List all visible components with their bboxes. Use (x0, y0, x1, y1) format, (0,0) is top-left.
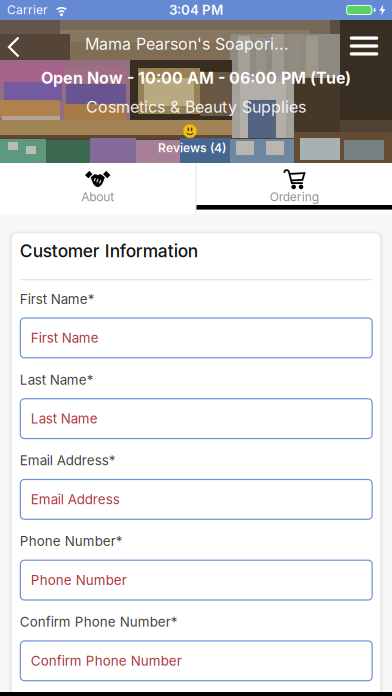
button[interactable]: Email Address (20, 479, 373, 520)
staticText: 3:04 PM (169, 2, 223, 18)
staticText: Last Name (31, 411, 98, 426)
button[interactable]: First Name (20, 317, 373, 358)
staticText: Phone Number (31, 572, 127, 588)
staticText: Confirm Phone Number* (20, 614, 178, 630)
button[interactable]: Last Name (20, 398, 373, 439)
button[interactable]: Menu (350, 36, 378, 56)
staticText: Phone Number* (20, 533, 123, 549)
staticText: First Name* (20, 291, 95, 307)
staticText: First Name (31, 330, 99, 346)
staticText: Email Address (31, 491, 120, 507)
staticText: Ordering (270, 190, 319, 204)
staticText: Carrier (7, 3, 48, 17)
staticText: Customer Information (20, 241, 198, 261)
staticText: Confirm Phone Number (31, 653, 182, 669)
button[interactable]: Confirm Phone Number (20, 640, 373, 681)
button[interactable]: Phone Number (20, 560, 373, 601)
staticText: About (81, 190, 114, 204)
button[interactable]: Ordering (196, 163, 392, 214)
staticText: Reviews (4) (158, 141, 226, 155)
button[interactable]: Back (4, 35, 24, 59)
staticText: Open Now - 10:00 AM - 06:00 PM (Tue) (41, 69, 351, 87)
staticText: Cosmetics & Beauty Supplies (86, 98, 306, 116)
button[interactable]: About (0, 163, 195, 214)
staticText: Email Address* (20, 453, 116, 468)
staticText: Mama Pearson's Soapori... (85, 35, 289, 53)
staticText: Last Name* (20, 372, 94, 388)
